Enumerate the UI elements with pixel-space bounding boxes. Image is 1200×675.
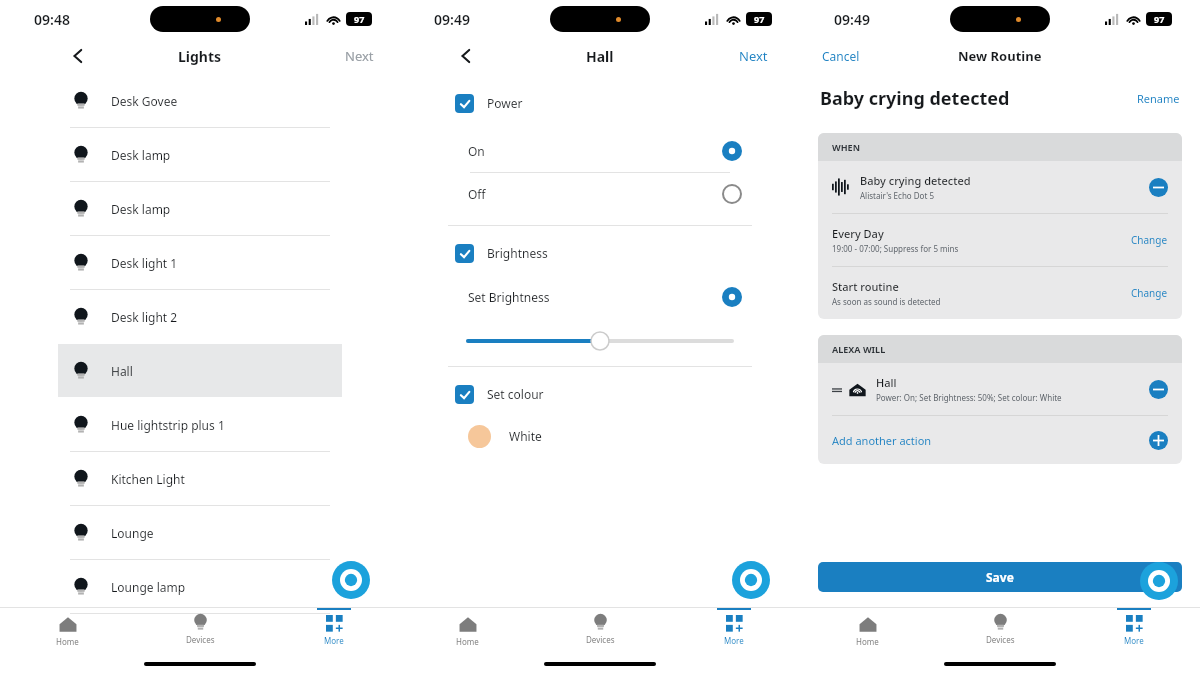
staticText: More — [724, 635, 744, 646]
button[interactable]: Set colour — [455, 379, 800, 409]
staticText: Power — [487, 95, 523, 111]
staticText: Kitchen Light — [111, 471, 185, 487]
button[interactable]: More — [667, 608, 800, 653]
staticText: Hue lightstrip plus 1 — [111, 417, 225, 433]
staticText: 09:49 — [434, 10, 470, 29]
button[interactable] — [455, 244, 474, 263]
staticText: Off — [468, 186, 722, 202]
staticText: On — [468, 143, 722, 159]
staticText: Home — [856, 636, 879, 647]
staticText: Desk light 1 — [111, 255, 178, 271]
staticText: Baby crying detected — [820, 86, 1137, 111]
staticText: Devices — [186, 634, 215, 645]
button[interactable]: Home — [800, 608, 934, 653]
staticText: Lounge lamp — [111, 579, 186, 595]
staticText: Lights — [178, 47, 222, 66]
button[interactable]: Devices — [534, 608, 667, 653]
button[interactable]: Rename — [1137, 91, 1180, 106]
staticText: Power: On; Set Brightness: 50%; Set colo… — [876, 392, 1062, 403]
staticText: Desk lamp — [111, 147, 171, 163]
staticText: Lounge — [111, 525, 154, 541]
button[interactable]: Hall — [832, 363, 1168, 415]
button[interactable]: Devices — [134, 608, 267, 653]
button[interactable]: Kitchen Light — [58, 452, 342, 505]
button[interactable] — [722, 184, 742, 204]
staticText: Set colour — [487, 386, 544, 402]
button[interactable]: On — [458, 130, 742, 172]
staticText: Baby crying detected — [860, 173, 971, 188]
button[interactable]: Desk light 2 — [58, 290, 342, 343]
staticText: Add another action — [832, 433, 1149, 448]
staticText: Devices — [586, 634, 615, 645]
staticText: 97 — [354, 13, 365, 25]
staticText: 97 — [754, 13, 765, 25]
button[interactable]: Add — [1149, 431, 1168, 450]
button[interactable]: Power — [455, 88, 800, 118]
staticText: Desk lamp — [111, 201, 171, 217]
staticText: Every Day — [832, 226, 884, 241]
button[interactable] — [722, 141, 742, 161]
staticText: Desk light 2 — [111, 309, 178, 325]
button[interactable]: Desk light 1 — [58, 236, 342, 289]
button[interactable]: Home — [0, 608, 134, 653]
button[interactable]: Remove — [1149, 178, 1168, 197]
staticText: Home — [56, 636, 79, 647]
button[interactable]: Lounge — [58, 506, 342, 559]
staticText: Hall — [586, 47, 614, 66]
button[interactable]: Off — [458, 173, 742, 215]
staticText: 97 — [1154, 13, 1165, 25]
staticText: More — [1124, 635, 1144, 646]
button[interactable]: Back — [458, 48, 474, 64]
button[interactable]: Back — [70, 48, 86, 64]
button[interactable]: Home — [400, 608, 534, 653]
staticText: 09:48 — [34, 10, 70, 29]
button[interactable]: Set Brightness — [458, 280, 742, 314]
button[interactable]: Lounge lamp — [58, 560, 342, 613]
button[interactable]: Every Day — [832, 214, 1168, 266]
button[interactable]: White — [468, 419, 800, 453]
staticText: WHEN — [832, 141, 860, 153]
button[interactable]: Desk lamp — [58, 182, 342, 235]
staticText: Set Brightness — [468, 289, 722, 305]
button[interactable]: More — [267, 608, 400, 653]
button[interactable]: Save — [818, 562, 1182, 592]
staticText: Home — [456, 636, 479, 647]
button[interactable] — [455, 385, 474, 404]
button[interactable]: Brightness — [455, 238, 800, 268]
staticText: Start routine — [832, 279, 899, 294]
staticText: As soon as sound is detected — [832, 296, 941, 307]
staticText: White — [509, 428, 542, 444]
button[interactable]: Cancel — [822, 48, 860, 64]
staticText: Hall — [111, 363, 133, 379]
button[interactable]: Start routine — [832, 267, 1168, 319]
button[interactable]: Baby crying detected — [832, 161, 1168, 213]
button[interactable]: Alexa — [1140, 562, 1178, 600]
staticText: New Routine — [958, 47, 1042, 65]
button[interactable] — [455, 94, 474, 113]
button[interactable]: Remove — [1149, 380, 1168, 399]
button[interactable]: Desk lamp — [58, 128, 342, 181]
button[interactable]: Add another action — [832, 416, 1168, 464]
button[interactable]: Hue lightstrip plus 1 — [58, 398, 342, 451]
button[interactable]: Change — [1131, 233, 1168, 247]
staticText: Hall — [876, 375, 897, 390]
staticText: More — [324, 635, 344, 646]
button[interactable]: Hall — [58, 344, 342, 397]
button[interactable]: Devices — [934, 608, 1067, 653]
button[interactable]: Change — [1131, 286, 1168, 300]
staticText: Brightness — [487, 245, 548, 261]
button[interactable]: Alexa — [332, 561, 370, 599]
staticText: Save — [986, 569, 1014, 585]
staticText: 09:49 — [834, 10, 870, 29]
staticText: 19:00 - 07:00; Suppress for 5 mins — [832, 243, 959, 254]
button[interactable] — [722, 287, 742, 307]
button[interactable] — [468, 330, 732, 352]
button[interactable]: Desk Govee — [58, 74, 342, 127]
staticText: Devices — [986, 634, 1015, 645]
button[interactable]: More — [1067, 608, 1200, 653]
button[interactable]: Next — [345, 47, 374, 65]
button[interactable]: Alexa — [732, 561, 770, 599]
staticText: ALEXA WILL — [832, 343, 886, 355]
button[interactable]: Next — [739, 47, 768, 65]
staticText: Desk Govee — [111, 93, 178, 109]
